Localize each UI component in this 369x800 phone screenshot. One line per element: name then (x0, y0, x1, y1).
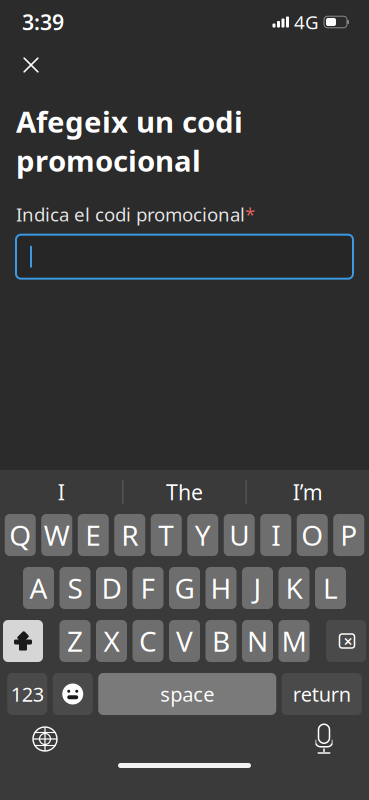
staticText: * (245, 202, 255, 227)
staticText: U (229, 516, 249, 554)
staticText: A (29, 569, 47, 607)
staticText: I’m (293, 478, 323, 506)
button[interactable]: D (96, 567, 127, 609)
staticText: V (176, 622, 193, 660)
button[interactable]: P (333, 514, 364, 556)
button[interactable]: C (132, 620, 163, 662)
button[interactable]: Shift (3, 620, 43, 662)
button[interactable]: J (242, 567, 273, 609)
button[interactable]: space (98, 673, 276, 715)
staticText: M (281, 622, 306, 660)
button[interactable]: K (278, 567, 309, 609)
button[interactable]: return (282, 673, 362, 715)
button[interactable]: O (297, 514, 328, 556)
staticText: N (247, 622, 268, 660)
button[interactable]: I (260, 514, 291, 556)
staticText: R (121, 516, 138, 554)
staticText: T (158, 516, 174, 554)
staticText: C (139, 622, 157, 660)
button[interactable] (16, 235, 353, 279)
staticText: P (340, 516, 357, 554)
button[interactable]: Dictate (309, 722, 339, 756)
button[interactable]: I’m (247, 470, 369, 514)
staticText: Indica el codi promocional (16, 202, 245, 227)
button[interactable]: N (242, 620, 273, 662)
staticText: O (301, 516, 323, 554)
staticText: K (285, 569, 302, 607)
button[interactable]: G (169, 567, 200, 609)
staticText: return (293, 681, 351, 707)
staticText: Y (195, 516, 211, 554)
staticText: 123 (11, 681, 44, 707)
button[interactable]: Change keyboard (30, 724, 60, 754)
staticText: Afegeix un codi promocional (16, 102, 243, 180)
button[interactable]: M (278, 620, 309, 662)
button[interactable]: H (205, 567, 236, 609)
staticText: L (323, 569, 338, 607)
button[interactable]: S (59, 567, 90, 609)
staticText: J (253, 569, 261, 607)
staticText: 3:39 (22, 8, 64, 36)
staticText: I (58, 478, 65, 506)
button[interactable]: X (96, 620, 127, 662)
staticText: E (85, 516, 101, 554)
button[interactable]: V (169, 620, 200, 662)
button[interactable]: Delete (326, 620, 366, 662)
staticText: B (212, 622, 230, 660)
button[interactable]: B (205, 620, 236, 662)
staticText: I (271, 516, 280, 554)
button[interactable]: 123 (7, 673, 47, 715)
button[interactable]: L (315, 567, 346, 609)
button[interactable]: F (132, 567, 163, 609)
button[interactable]: Emoji (53, 673, 93, 715)
staticText: Z (67, 622, 83, 660)
button[interactable]: T (151, 514, 182, 556)
button[interactable]: E (78, 514, 109, 556)
button[interactable]: A (23, 567, 54, 609)
button[interactable]: W (41, 514, 72, 556)
staticText: H (210, 569, 231, 607)
staticText: W (44, 516, 70, 554)
button[interactable]: I (0, 470, 122, 514)
button[interactable]: The (123, 470, 246, 514)
button[interactable]: Z (59, 620, 90, 662)
staticText: The (166, 478, 203, 506)
staticText: Q (9, 516, 31, 554)
button[interactable]: U (224, 514, 255, 556)
staticText: X (103, 622, 119, 660)
staticText: F (140, 569, 155, 607)
staticText: G (174, 569, 194, 607)
button[interactable]: Q (5, 514, 36, 556)
staticText: × (343, 630, 352, 652)
staticText: D (101, 569, 121, 607)
button[interactable]: R (114, 514, 145, 556)
staticText: S (67, 569, 82, 607)
button[interactable]: Y (187, 514, 218, 556)
button[interactable]: Close (8, 46, 46, 84)
staticText: space (160, 681, 214, 707)
staticText: 4G (294, 10, 319, 34)
